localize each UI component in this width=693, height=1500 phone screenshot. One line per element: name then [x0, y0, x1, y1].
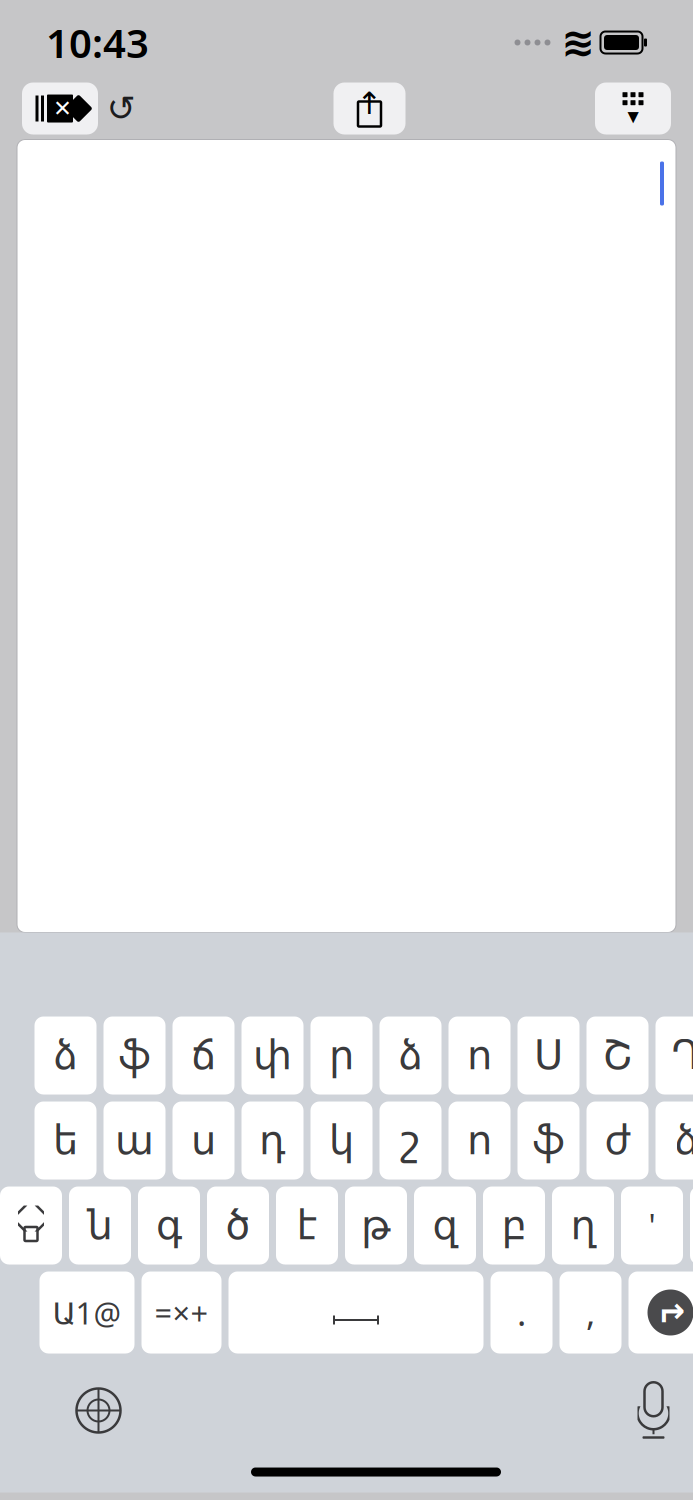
- button[interactable]: Delete: [690, 1186, 693, 1264]
- button[interactable]: կ: [310, 1101, 372, 1179]
- staticText: ✕: [53, 96, 72, 121]
- button[interactable]: Undo: [98, 82, 144, 134]
- button[interactable]: Շ: [586, 1016, 648, 1094]
- button[interactable]: բ: [483, 1186, 545, 1264]
- button[interactable]: Text editor: [17, 139, 676, 932]
- button[interactable]: ե: [34, 1101, 96, 1179]
- button[interactable]: Space: [228, 1271, 483, 1353]
- button[interactable]: ֆ: [103, 1016, 165, 1094]
- button[interactable]: Ա1@: [39, 1271, 134, 1353]
- button[interactable]: շ: [379, 1101, 441, 1179]
- staticText: ձ: [674, 1118, 693, 1163]
- staticText: ↵: [656, 1293, 685, 1332]
- staticText: բ: [501, 1203, 526, 1248]
- button[interactable]: =×+: [141, 1271, 221, 1353]
- button[interactable]: ր: [310, 1016, 372, 1094]
- staticText: ,: [586, 1289, 595, 1335]
- button[interactable]: Change keyboard: [63, 1375, 133, 1445]
- staticText: .: [517, 1289, 526, 1335]
- button[interactable]: ,: [559, 1271, 621, 1353]
- staticText: ե: [53, 1118, 78, 1163]
- staticText: 10:43: [46, 16, 149, 69]
- staticText: ձ: [53, 1033, 77, 1078]
- staticText: ո: [467, 1118, 492, 1163]
- staticText: ↺: [106, 89, 135, 128]
- staticText: ծ: [225, 1203, 250, 1248]
- staticText: շ: [400, 1118, 420, 1163]
- staticText: զ: [432, 1203, 457, 1248]
- button[interactable]: Share: [333, 82, 405, 134]
- staticText: դ: [259, 1118, 286, 1163]
- staticText: Ղ: [671, 1033, 693, 1078]
- button[interactable]: ղ: [552, 1186, 614, 1264]
- staticText: ▼: [627, 108, 638, 125]
- button[interactable]: ն: [69, 1186, 131, 1264]
- button[interactable]: ո: [448, 1101, 510, 1179]
- staticText: ձ: [398, 1033, 422, 1078]
- staticText: թ: [361, 1203, 391, 1248]
- staticText: Ս: [534, 1033, 563, 1078]
- staticText: ': [648, 1204, 655, 1247]
- staticText: ո: [467, 1033, 492, 1078]
- button[interactable]: ո: [448, 1016, 510, 1094]
- button[interactable]: ծ: [207, 1186, 269, 1264]
- button[interactable]: Hide keyboard: [595, 82, 671, 134]
- button[interactable]: ճ: [172, 1016, 234, 1094]
- staticText: ֆ: [532, 1118, 564, 1163]
- button[interactable]: զ: [414, 1186, 476, 1264]
- staticText: ն: [87, 1203, 112, 1248]
- button[interactable]: է: [276, 1186, 338, 1264]
- button[interactable]: ֆ: [517, 1101, 579, 1179]
- button[interactable]: թ: [345, 1186, 407, 1264]
- staticText: ա: [115, 1118, 154, 1163]
- staticText: ճ: [191, 1033, 216, 1078]
- staticText: է: [296, 1203, 317, 1248]
- button[interactable]: Ս: [517, 1016, 579, 1094]
- button[interactable]: ժ: [586, 1101, 648, 1179]
- button[interactable]: .: [490, 1271, 552, 1353]
- button[interactable]: դ: [241, 1101, 303, 1179]
- staticText: ղ: [570, 1203, 595, 1248]
- button[interactable]: ա: [103, 1101, 165, 1179]
- button[interactable]: ձ: [655, 1101, 693, 1179]
- staticText: Ա1@: [52, 1292, 121, 1333]
- staticText: ֆ: [118, 1033, 150, 1078]
- button[interactable]: գ: [138, 1186, 200, 1264]
- staticText: ≋: [561, 20, 595, 65]
- button[interactable]: ': [621, 1186, 683, 1264]
- button[interactable]: Ղ: [655, 1016, 693, 1094]
- button[interactable]: փ: [241, 1016, 303, 1094]
- staticText: փ: [253, 1033, 292, 1078]
- staticText: Շ: [602, 1033, 632, 1078]
- button[interactable]: Shift: [0, 1186, 62, 1264]
- button[interactable]: Clear text: [22, 82, 98, 134]
- staticText: ս: [191, 1118, 216, 1163]
- staticText: ժ: [604, 1118, 630, 1163]
- button[interactable]: Return: [628, 1271, 693, 1353]
- button[interactable]: Dictate: [618, 1375, 688, 1445]
- staticText: =×+: [154, 1292, 208, 1333]
- staticText: ր: [329, 1033, 354, 1078]
- staticText: կ: [329, 1118, 354, 1163]
- staticText: ↑: [356, 86, 382, 121]
- button[interactable]: ձ: [379, 1016, 441, 1094]
- staticText: գ: [156, 1203, 182, 1248]
- button[interactable]: ս: [172, 1101, 234, 1179]
- button[interactable]: ձ: [34, 1016, 96, 1094]
